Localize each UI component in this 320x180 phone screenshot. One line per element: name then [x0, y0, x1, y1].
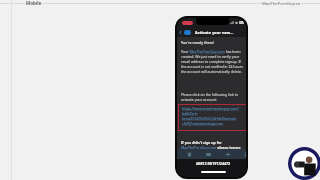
- button[interactable]: Sender avatar: [184, 30, 191, 35]
- button[interactable]: Archive: [204, 149, 212, 159]
- button[interactable]: Reply: [224, 149, 232, 159]
- button[interactable]: Back: [178, 30, 183, 35]
- staticText: You're nearly there!: [181, 40, 215, 45]
- staticText: Your MaxThePornGuy.com has been created.…: [181, 49, 246, 74]
- staticText: #0813 RR19T/24473: [196, 161, 231, 166]
- button[interactable]: Channel logo: [288, 147, 320, 180]
- button[interactable]: Back: [177, 28, 246, 37]
- staticText: Please click on the following link to ac…: [181, 92, 246, 102]
- staticText: Mobile: [26, 0, 42, 6]
- button[interactable]: Activation link: [178, 104, 246, 131]
- button[interactable]: Compose: [243, 149, 246, 159]
- staticText: Activate your new...: [195, 30, 234, 35]
- staticText: MaxThePornGuy.com please ignore: [181, 145, 241, 150]
- staticText: MaxThePornGuy.co: [262, 1, 301, 7]
- staticText: https://www.maxthepornguy.com/ ba0rZsrh:…: [182, 106, 246, 126]
- staticText: If you didn't sign up for: [181, 140, 222, 145]
- button[interactable]: Delete: [185, 149, 193, 159]
